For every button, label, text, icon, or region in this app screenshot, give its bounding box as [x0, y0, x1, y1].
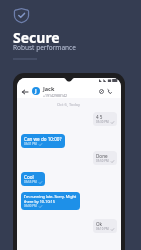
button[interactable]: Block: [97, 87, 105, 95]
staticText: 05:55 PM: [24, 180, 37, 184]
staticText: 06:00 PM: [24, 204, 37, 208]
staticText: +19142988142: [43, 93, 68, 98]
staticText: Jack: [43, 85, 55, 92]
staticText: 06:10 PM: [96, 227, 109, 231]
staticText: 05:30 PM: [96, 120, 109, 124]
staticText: Secure: [13, 28, 60, 47]
button[interactable]: Cool: [21, 172, 45, 186]
button[interactable]: Can we do 10:00?: [21, 134, 65, 148]
button[interactable]: Back: [19, 86, 30, 97]
staticText: I'm running late. Sorry. Might there by …: [24, 194, 77, 204]
staticText: J: [35, 88, 37, 95]
button[interactable]: Done: [93, 151, 117, 165]
staticText: 4 5: [96, 114, 103, 120]
staticText: 05:50 PM: [96, 159, 109, 163]
button[interactable]: Ok: [93, 219, 117, 233]
button[interactable]: I'm running late. Sorry. Might there by …: [21, 192, 80, 210]
staticText: Robust performance: [13, 43, 76, 52]
staticText: Done: [96, 153, 108, 159]
staticText: Oct 6, Today: [57, 102, 81, 107]
staticText: 05:31 PM: [24, 142, 37, 146]
button[interactable]: Call: [105, 87, 113, 95]
staticText: Ok: [96, 221, 103, 227]
staticText: Cool: [24, 174, 34, 180]
staticText: Can we do 10:00?: [24, 136, 62, 142]
button[interactable]: 4 5: [93, 112, 117, 126]
